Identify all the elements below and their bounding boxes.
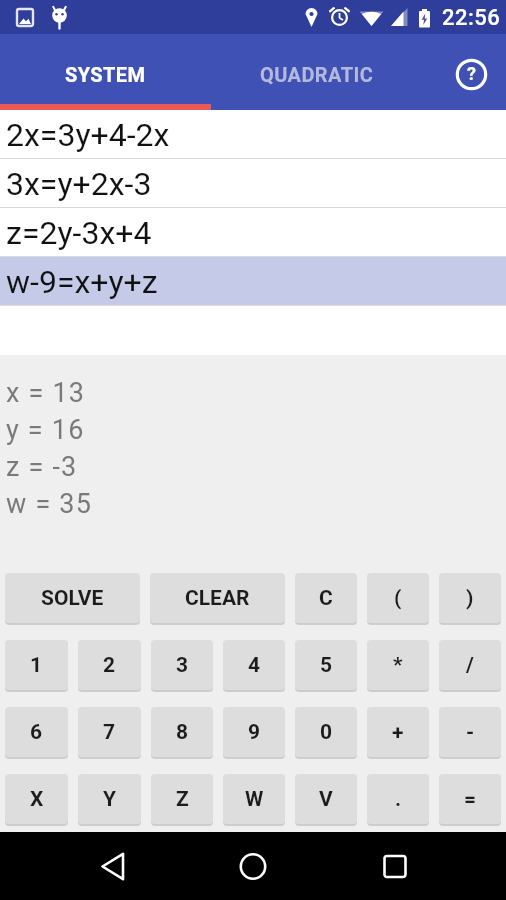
- staticText: /: [466, 653, 474, 678]
- staticText: =: [464, 787, 477, 812]
- staticText: 2: [103, 653, 116, 678]
- staticText: 0: [320, 720, 333, 745]
- staticText: ): [466, 586, 474, 611]
- staticText: Z: [176, 787, 189, 812]
- staticText: -: [466, 720, 475, 745]
- staticText: Y: [103, 787, 116, 812]
- staticText: 3x=y+2x-3: [6, 165, 152, 203]
- staticText: y = 16: [6, 414, 85, 446]
- staticText: ?: [467, 63, 476, 84]
- staticText: X: [30, 787, 44, 812]
- staticText: 8: [176, 720, 189, 745]
- staticText: 3: [176, 653, 189, 678]
- staticText: 4: [248, 653, 261, 678]
- staticText: V: [319, 787, 333, 812]
- staticText: z = -3: [6, 451, 78, 483]
- staticText: 22:56: [442, 5, 501, 31]
- staticText: z=2y-3x+4: [6, 214, 152, 252]
- staticText: 1: [30, 653, 43, 678]
- staticText: (: [394, 586, 402, 611]
- staticText: 9: [248, 720, 261, 745]
- staticText: 6: [30, 720, 43, 745]
- staticText: x = 13: [6, 377, 86, 409]
- staticText: +: [392, 720, 404, 745]
- staticText: 2x=3y+4-2x: [6, 116, 170, 154]
- staticText: QUADRATIC: [260, 63, 374, 86]
- staticText: CLEAR: [185, 586, 250, 611]
- staticText: 7: [103, 720, 116, 745]
- staticText: w = 35: [6, 488, 93, 520]
- staticText: SYSTEM: [65, 63, 146, 86]
- staticText: w-9=x+y+z: [6, 263, 158, 301]
- staticText: *: [393, 653, 403, 678]
- staticText: 5: [320, 653, 333, 678]
- staticText: .: [395, 787, 402, 812]
- staticText: SOLVE: [41, 586, 104, 611]
- staticText: C: [319, 586, 333, 611]
- staticText: W: [245, 787, 264, 812]
